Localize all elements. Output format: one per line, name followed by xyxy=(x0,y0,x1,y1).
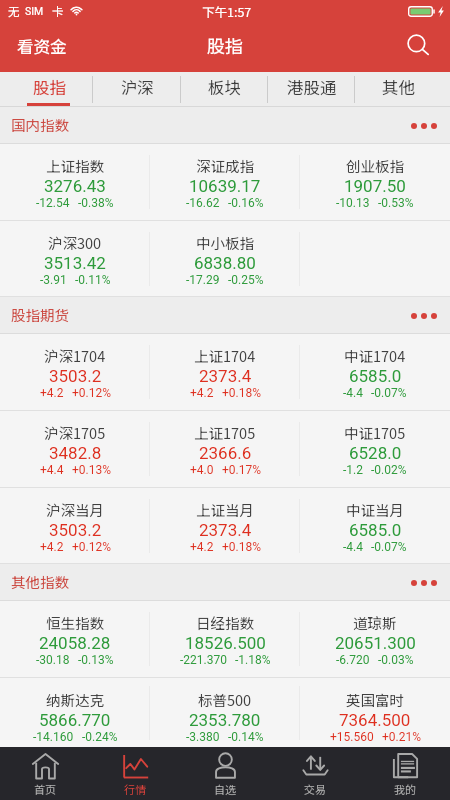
button[interactable]: 标普500 xyxy=(150,678,300,747)
staticText: -6.720 xyxy=(336,653,370,667)
staticText: 股指 xyxy=(33,75,66,99)
staticText: +0.13% xyxy=(72,463,111,477)
staticText: -3.91 xyxy=(40,273,67,287)
staticText: +4.2 xyxy=(40,386,64,400)
staticText: 沪深300 xyxy=(48,232,102,253)
staticText: -17.29 xyxy=(186,273,220,287)
staticText: 沪深当月 xyxy=(46,499,104,520)
staticText: 3276.43 xyxy=(44,176,106,196)
button[interactable]: 中小板指 xyxy=(150,221,300,296)
button[interactable]: More xyxy=(411,107,450,144)
staticText: -0.13% xyxy=(78,653,114,667)
button[interactable]: More xyxy=(411,297,450,334)
staticText: +0.17% xyxy=(222,463,261,477)
button[interactable]: 行情 xyxy=(90,747,180,800)
button[interactable]: 首页 xyxy=(0,747,90,800)
button[interactable]: 沪深300 xyxy=(0,221,150,296)
staticText: 港股通 xyxy=(287,75,337,99)
button[interactable]: 英国富时 xyxy=(300,678,450,747)
staticText: 3513.42 xyxy=(44,253,106,273)
staticText: 1907.50 xyxy=(344,176,406,196)
button[interactable]: 中证1704 xyxy=(300,334,450,410)
staticText: +0.21% xyxy=(382,730,421,744)
staticText: 其他 xyxy=(382,75,415,99)
staticText: +0.18% xyxy=(222,386,261,400)
staticText: -4.4 xyxy=(343,386,363,400)
staticText: -10.13 xyxy=(336,196,370,210)
staticText: 7364.500 xyxy=(339,710,411,730)
staticText: +15.560 xyxy=(330,730,374,744)
staticText: 我的 xyxy=(394,781,416,797)
staticText: 下午1:57 xyxy=(202,2,252,20)
staticText: 沪深 xyxy=(121,75,154,99)
button[interactable]: 其他 xyxy=(355,72,442,106)
staticText: -0.07% xyxy=(371,386,407,400)
button[interactable]: 股指 xyxy=(5,72,93,106)
staticText: 中小板指 xyxy=(196,232,254,253)
staticText: -0.11% xyxy=(75,273,111,287)
staticText: -0.24% xyxy=(82,730,118,744)
button[interactable]: 中证当月 xyxy=(300,488,450,563)
button[interactable]: 看资金 xyxy=(0,24,79,72)
button[interactable]: 恒生指数 xyxy=(0,601,150,677)
staticText: -0.07% xyxy=(371,540,407,554)
staticText: 3482.8 xyxy=(49,443,102,463)
button[interactable]: Search xyxy=(392,24,450,72)
staticText: -0.03% xyxy=(378,653,414,667)
button[interactable]: 沪深1705 xyxy=(0,411,150,487)
staticText: 3503.2 xyxy=(49,366,102,386)
staticText: 沪深1704 xyxy=(44,345,106,366)
staticText: 3503.2 xyxy=(49,520,102,540)
staticText: +4.4 xyxy=(40,463,64,477)
staticText: 交易 xyxy=(304,781,326,797)
button[interactable]: 纳斯达克 xyxy=(0,678,150,747)
button[interactable]: 日经指数 xyxy=(150,601,300,677)
button[interactable]: 自选 xyxy=(180,747,270,800)
staticText: -4.4 xyxy=(343,540,363,554)
button[interactable]: 上证1705 xyxy=(150,411,300,487)
button[interactable]: 深证成指 xyxy=(150,144,300,220)
staticText: -221.370 xyxy=(180,653,227,667)
staticText: 上证当月 xyxy=(196,499,254,520)
staticText: +0.12% xyxy=(72,540,111,554)
button[interactable]: 沪深当月 xyxy=(0,488,150,563)
staticText: 6838.80 xyxy=(194,253,256,273)
staticText: 6585.0 xyxy=(349,366,402,386)
staticText: 上证1704 xyxy=(194,345,256,366)
button[interactable]: 我的 xyxy=(360,747,450,800)
staticText: 其他指数 xyxy=(11,571,69,592)
staticText: 恒生指数 xyxy=(46,612,104,633)
button[interactable]: 创业板指 xyxy=(300,144,450,220)
staticText: -0.25% xyxy=(228,273,264,287)
button[interactable]: 上证当月 xyxy=(150,488,300,563)
button[interactable]: 上证指数 xyxy=(0,144,150,220)
staticText: 中证当月 xyxy=(346,499,404,520)
button[interactable]: 上证1704 xyxy=(150,334,300,410)
button[interactable]: 沪深1704 xyxy=(0,334,150,410)
staticText: 英国富时 xyxy=(346,689,404,710)
staticText: -3.380 xyxy=(186,730,220,744)
staticText: 24058.28 xyxy=(39,633,111,653)
staticText: 2373.4 xyxy=(199,520,252,540)
button[interactable]: More xyxy=(411,564,450,601)
staticText: 卡 xyxy=(52,3,64,20)
staticText: 看资金 xyxy=(17,34,67,58)
button[interactable]: 中证1705 xyxy=(300,411,450,487)
button[interactable]: 沪深 xyxy=(93,72,181,106)
staticText: 道琼斯 xyxy=(353,612,397,633)
staticText: 日经指数 xyxy=(196,612,254,633)
staticText: 上证1705 xyxy=(194,422,256,443)
button[interactable]: 港股通 xyxy=(268,72,355,106)
staticText: 2373.4 xyxy=(199,366,252,386)
staticText: 2353.780 xyxy=(189,710,261,730)
button[interactable]: 交易 xyxy=(270,747,360,800)
staticText: -0.38% xyxy=(78,196,114,210)
staticText: -16.62 xyxy=(186,196,220,210)
staticText: -30.18 xyxy=(36,653,70,667)
button[interactable]: 板块 xyxy=(181,72,268,106)
staticText: 标普500 xyxy=(198,689,252,710)
staticText: -0.02% xyxy=(371,463,407,477)
button[interactable]: 道琼斯 xyxy=(300,601,450,677)
staticText: 深证成指 xyxy=(196,155,254,176)
staticText: 股指 xyxy=(207,32,243,58)
